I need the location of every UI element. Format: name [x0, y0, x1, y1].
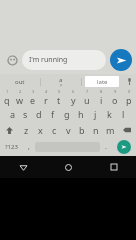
button[interactable]: Shift	[0, 122, 19, 138]
staticText: h	[78, 108, 84, 120]
staticText: w	[16, 94, 24, 106]
staticText: n	[93, 124, 99, 136]
button[interactable]: a	[41, 74, 81, 89]
staticText: s	[23, 108, 28, 120]
button[interactable]: Backspace	[117, 122, 136, 138]
staticText: 9	[114, 89, 117, 94]
staticText: late	[97, 78, 108, 86]
button[interactable]: 3	[26, 89, 39, 106]
staticText: I'm running	[29, 55, 68, 65]
button[interactable]: Send	[110, 49, 132, 71]
button[interactable]: 9	[108, 89, 122, 106]
button[interactable]: f	[46, 106, 60, 122]
button[interactable]: m	[103, 122, 117, 138]
button[interactable]: 0	[122, 89, 136, 106]
button[interactable]: ?123	[0, 138, 23, 156]
staticText: 2	[19, 89, 22, 94]
staticText: 6	[72, 89, 75, 94]
button[interactable]: Recents	[91, 156, 136, 178]
staticText: i	[100, 94, 103, 106]
staticText: .	[105, 142, 107, 152]
staticText: f	[51, 108, 55, 120]
staticText: l	[122, 108, 125, 120]
button[interactable]: Back	[0, 156, 46, 178]
button[interactable]: 8	[94, 89, 108, 106]
button[interactable]: z	[19, 122, 33, 138]
button[interactable]: late	[85, 76, 119, 87]
button[interactable]: x	[33, 122, 47, 138]
staticText: t	[57, 94, 61, 106]
button[interactable]: Send message	[117, 140, 131, 154]
button[interactable]: 7	[80, 89, 94, 106]
button[interactable]: s	[19, 106, 32, 122]
button[interactable]: v	[61, 122, 75, 138]
button[interactable]: ,	[23, 138, 35, 156]
button[interactable]: 5	[52, 89, 66, 106]
staticText: 8	[100, 89, 103, 94]
staticText: a	[10, 108, 16, 120]
button[interactable]: d	[32, 106, 46, 122]
staticText: x	[38, 124, 43, 136]
staticText: ?123	[5, 143, 18, 151]
staticText: 4	[45, 89, 48, 94]
button[interactable]: g	[60, 106, 74, 122]
button[interactable]: Emoji	[4, 52, 20, 68]
staticText: v	[66, 124, 71, 136]
staticText: m	[106, 124, 115, 136]
button[interactable]: 4	[39, 89, 52, 106]
button[interactable]: Voice input	[122, 74, 136, 89]
staticText: 7	[86, 89, 89, 94]
button[interactable]: a	[6, 106, 19, 122]
button[interactable]: 2	[13, 89, 26, 106]
staticText: o	[112, 94, 118, 106]
staticText: 0	[128, 89, 131, 94]
button[interactable]: l	[116, 106, 130, 122]
button[interactable]: out	[0, 74, 40, 89]
staticText: 1	[6, 89, 9, 94]
staticText: y	[71, 94, 76, 106]
button[interactable]: c	[47, 122, 61, 138]
staticText: d	[36, 108, 42, 120]
staticText: z	[24, 124, 29, 136]
staticText: 5	[58, 89, 61, 94]
staticText: ,	[28, 142, 30, 152]
button[interactable]: n	[89, 122, 103, 138]
button[interactable]: I'm running	[22, 50, 106, 70]
staticText: q	[4, 94, 10, 106]
staticText: out	[15, 78, 25, 86]
button[interactable]: h	[74, 106, 88, 122]
button[interactable]: 6	[66, 89, 80, 106]
staticText: j	[94, 108, 97, 120]
staticText: p	[126, 94, 132, 106]
staticText: g	[64, 108, 70, 120]
staticText: k	[107, 108, 112, 120]
button[interactable]: k	[102, 106, 116, 122]
button[interactable]: j	[88, 106, 102, 122]
staticText: b	[79, 124, 85, 136]
staticText: a	[59, 76, 63, 84]
button[interactable]: Home	[46, 156, 91, 178]
staticText: c	[52, 124, 57, 136]
staticText: e	[30, 94, 36, 106]
staticText: u	[84, 94, 90, 106]
staticText: 3	[32, 89, 35, 94]
button[interactable]: 1	[0, 89, 13, 106]
button[interactable]: .	[100, 138, 112, 156]
button[interactable]: b	[75, 122, 89, 138]
staticText: r	[44, 94, 48, 106]
